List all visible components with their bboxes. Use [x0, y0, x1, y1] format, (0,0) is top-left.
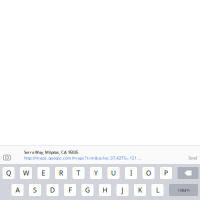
staticText: E: [41, 169, 45, 177]
button[interactable]: S: [29, 184, 41, 196]
staticText: Y: [94, 169, 98, 177]
button[interactable]: Camera: [0, 155, 11, 161]
staticText: F: [68, 186, 71, 194]
button[interactable]: J: [116, 184, 128, 196]
staticText: T: [76, 169, 80, 177]
button[interactable]: Y: [90, 167, 102, 179]
staticText: K: [138, 186, 142, 194]
button[interactable]: A: [11, 184, 23, 196]
staticText: Send: [188, 155, 196, 160]
staticText: S: [33, 186, 37, 194]
staticText: J: [121, 186, 123, 194]
staticText: A: [15, 186, 19, 194]
button[interactable]: G: [81, 184, 93, 196]
button[interactable]: D: [46, 184, 58, 196]
staticText: Q: [6, 169, 11, 177]
staticText: H: [102, 186, 107, 194]
staticText: G: [85, 186, 90, 194]
staticText: U: [111, 169, 116, 177]
button[interactable]: return: [169, 184, 198, 196]
button[interactable]: W: [20, 167, 32, 179]
staticText: L: [156, 186, 159, 194]
button[interactable]: Q: [2, 167, 14, 179]
button[interactable]: R: [55, 167, 67, 179]
button[interactable]: U: [107, 167, 119, 179]
staticText: D: [50, 186, 55, 194]
button[interactable]: Delete: [177, 167, 198, 179]
button[interactable]: F: [64, 184, 76, 196]
button[interactable]: H: [99, 184, 111, 196]
staticText: W: [23, 169, 29, 177]
staticText: Serra Way, Milpitas, CA 95035: [24, 149, 78, 155]
staticText: I: [130, 169, 132, 177]
staticText: http://maps.google.com/maps?t=m&q=loc:37…: [24, 155, 141, 160]
button[interactable]: T: [72, 167, 84, 179]
button[interactable]: K: [134, 184, 146, 196]
button[interactable]: L: [151, 184, 163, 196]
staticText: O: [146, 169, 151, 177]
staticText: return: [178, 187, 189, 193]
button[interactable]: Send: [188, 155, 200, 160]
staticText: P: [164, 169, 168, 177]
button[interactable]: E: [37, 167, 49, 179]
button[interactable]: P: [160, 167, 172, 179]
button[interactable]: O: [142, 167, 154, 179]
button[interactable]: I: [125, 167, 137, 179]
staticText: R: [59, 169, 63, 177]
